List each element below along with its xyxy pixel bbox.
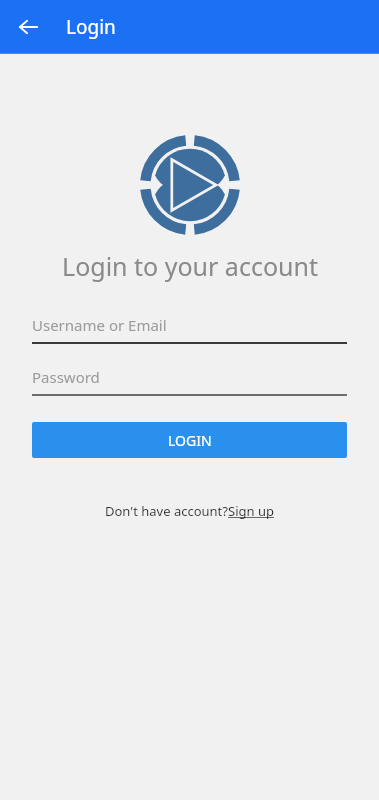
button[interactable]: Sign up — [228, 502, 274, 520]
button[interactable]: LOGIN — [32, 422, 347, 458]
staticText: Login — [66, 14, 116, 40]
staticText: LOGIN — [168, 431, 212, 450]
staticText: Username or Email — [32, 315, 167, 335]
staticText: Don't have account? — [105, 502, 228, 520]
staticText: Login to your account — [62, 249, 318, 283]
button[interactable]: Username or Email — [32, 307, 347, 344]
button[interactable]: Password — [32, 359, 347, 396]
staticText: Password — [32, 367, 100, 387]
button[interactable]: Back — [8, 7, 48, 47]
staticText: Sign up — [228, 502, 274, 520]
